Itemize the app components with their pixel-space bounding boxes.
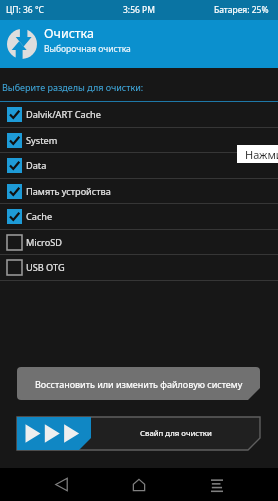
staticText: System — [26, 134, 58, 147]
button[interactable]: Home — [100, 468, 178, 501]
staticText: ЦП: 36 °C — [6, 4, 44, 16]
button[interactable]: Dalvik/ART Cache — [0, 102, 278, 127]
staticText: MicroSD — [26, 236, 63, 249]
button[interactable]: Recents — [178, 468, 256, 501]
button[interactable]: Data — [0, 153, 278, 178]
staticText: Нажмите — [245, 147, 278, 162]
button[interactable]: Нажмите — [237, 145, 278, 163]
staticText: Восстановить или изменить файловую систе… — [35, 378, 243, 390]
staticText: Выборочная очистка — [44, 43, 131, 55]
button[interactable]: Память устройства — [0, 179, 278, 204]
staticText: Cache — [26, 210, 53, 223]
staticText: Память устройства — [26, 185, 111, 198]
button[interactable]: System — [0, 128, 278, 153]
staticText: Data — [26, 159, 47, 172]
staticText: Очистка — [44, 25, 94, 42]
button[interactable]: USB OTG — [0, 255, 278, 280]
button[interactable]: Cache — [0, 204, 278, 229]
staticText: Батарея: 25% — [214, 4, 269, 16]
button[interactable]: Восстановить или изменить файловую систе… — [17, 367, 260, 400]
staticText: Свайп для очистки — [140, 428, 212, 439]
staticText: USB OTG — [26, 261, 65, 274]
staticText: Dalvik/ART Cache — [26, 108, 101, 121]
button[interactable]: Свайп для очистки — [17, 417, 260, 450]
button[interactable]: MicroSD — [0, 230, 278, 255]
staticText: Выберите разделы для очистки: — [2, 81, 144, 93]
button[interactable]: Очистка — [0, 20, 278, 68]
button[interactable]: Back — [22, 468, 100, 501]
staticText: 3:56 PM — [123, 4, 155, 16]
